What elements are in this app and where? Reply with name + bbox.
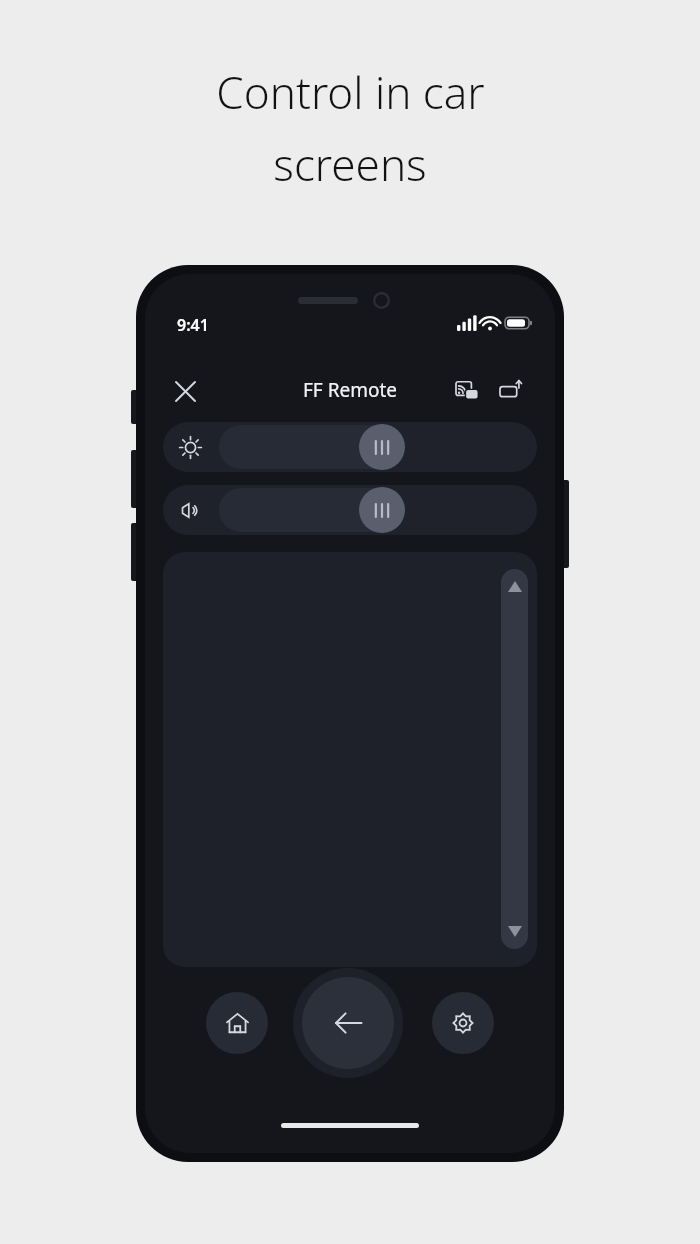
- button[interactable]: Brightness: [163, 422, 537, 472]
- staticText: screens: [273, 134, 427, 194]
- staticText: FF Remote: [303, 377, 398, 403]
- button[interactable]: Touchpad: [163, 552, 537, 967]
- button[interactable]: Settings: [432, 992, 494, 1054]
- staticText: Control in car: [216, 62, 485, 122]
- button[interactable]: Cast to screen: [445, 369, 489, 413]
- button[interactable]: Send to device: [489, 369, 533, 413]
- button[interactable]: Back: [293, 968, 403, 1078]
- button[interactable]: Close: [163, 369, 207, 413]
- button[interactable]: Scroll: [501, 569, 528, 949]
- staticText: 9:41: [177, 314, 209, 336]
- button[interactable]: Home: [206, 992, 268, 1054]
- button[interactable]: Volume: [163, 485, 537, 535]
